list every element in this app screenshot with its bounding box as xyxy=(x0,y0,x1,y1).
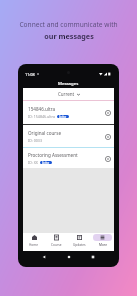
staticText: ID: 0033 xyxy=(28,138,42,143)
staticText: Active xyxy=(59,115,67,118)
staticText: Course xyxy=(51,243,62,247)
button[interactable]: More options xyxy=(104,109,111,116)
staticText: 154846.ultra xyxy=(28,106,56,112)
button[interactable]: Home xyxy=(23,233,45,251)
button[interactable]: More xyxy=(91,233,114,251)
staticText: Original course xyxy=(28,130,61,136)
staticText: Proctoring Assessment xyxy=(28,152,78,158)
button[interactable]: Recents xyxy=(90,254,96,260)
staticText: our messages xyxy=(44,31,94,41)
staticText: ID: 154846.ultra xyxy=(28,114,55,119)
staticText: Updates xyxy=(73,243,86,247)
button[interactable]: Proctoring Assessment xyxy=(23,148,114,168)
staticText: Home xyxy=(29,243,39,247)
button[interactable]: Original course xyxy=(23,125,114,147)
button[interactable]: Current xyxy=(23,88,114,100)
button[interactable]: 154846.ultra xyxy=(23,101,114,124)
button[interactable]: Home xyxy=(66,254,72,260)
button[interactable]: More options xyxy=(104,133,111,140)
button[interactable]: Back xyxy=(41,254,47,260)
button[interactable]: Updates xyxy=(68,233,91,251)
staticText: Connect and communicate with xyxy=(19,20,118,29)
staticText: Active xyxy=(42,161,50,164)
staticText: Messages xyxy=(58,80,79,86)
staticText: ID: XX xyxy=(28,160,38,165)
staticText: Current xyxy=(58,91,75,97)
staticText: More xyxy=(99,243,107,247)
button[interactable]: Course xyxy=(45,233,68,251)
staticText: 11:08 xyxy=(25,72,35,77)
button[interactable]: More options xyxy=(104,155,111,162)
